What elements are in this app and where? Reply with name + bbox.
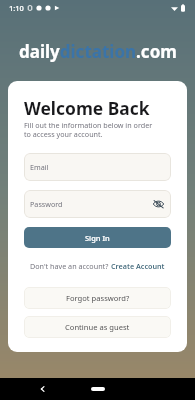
button[interactable]: Forgot password?: [24, 287, 171, 309]
staticText: Welcome Back: [24, 96, 150, 120]
button[interactable]: Continue as guest: [24, 316, 171, 338]
button[interactable]: Email: [24, 153, 171, 181]
button[interactable]: Back: [34, 380, 52, 398]
staticText: Create Account: [111, 261, 165, 271]
button[interactable]: Sign In: [24, 227, 171, 248]
staticText: Email: [30, 162, 49, 172]
staticText: dailydictation.com: [19, 40, 177, 63]
button[interactable]: Show password: [151, 197, 165, 211]
staticText: Sign In: [85, 233, 110, 243]
button[interactable]: Password: [24, 190, 171, 218]
staticText: Forgot password?: [66, 293, 130, 303]
staticText: 1:10: [9, 3, 24, 13]
staticText: Don't have an account?: [30, 261, 111, 271]
button[interactable]: Create Account: [111, 261, 165, 271]
staticText: Fill out the information below in order …: [24, 120, 153, 139]
staticText: Continue as guest: [65, 322, 130, 332]
button[interactable]: Home: [83, 380, 113, 398]
staticText: Password: [30, 199, 63, 209]
